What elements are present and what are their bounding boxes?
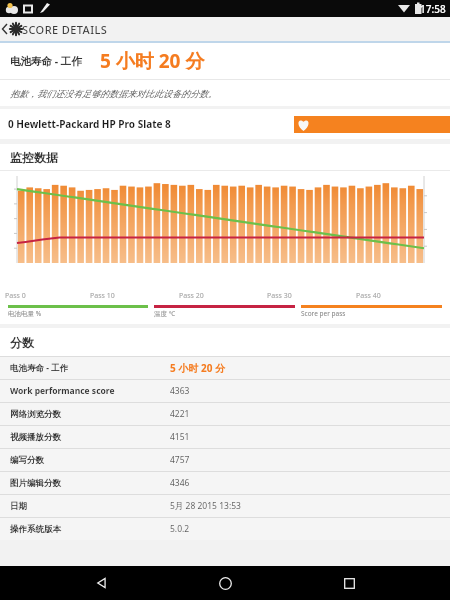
staticText: 5 小时 20 分	[170, 361, 225, 375]
staticText: 5.0.2	[170, 523, 190, 535]
staticText: SCORE DETAILS	[22, 22, 108, 37]
button[interactable]: Work performance score	[0, 380, 450, 402]
staticText: 4151	[170, 431, 190, 443]
button[interactable]: 操作系统版本	[0, 518, 450, 540]
button[interactable]: 视频播放分数	[0, 426, 450, 448]
button[interactable]: 编写分数	[0, 449, 450, 471]
button[interactable]: Home	[203, 566, 247, 600]
staticText: 监控数据	[10, 150, 58, 165]
button[interactable]: 网络浏览分数	[0, 403, 450, 425]
staticText: 5月 28 2015 13:53	[170, 500, 241, 512]
button[interactable]: 电池寿命 - 工作	[0, 357, 450, 379]
staticText: Pass 20	[179, 291, 204, 301]
staticText: Pass 40	[356, 291, 381, 301]
staticText: 4363	[170, 385, 190, 397]
staticText: 4757	[170, 454, 190, 466]
staticText: 电池电量 %	[8, 309, 42, 318]
button[interactable]: Recents	[327, 566, 371, 600]
staticText: 日期	[10, 501, 27, 512]
staticText: 电池寿命 - 工作	[10, 362, 69, 374]
staticText: Pass 0	[5, 291, 26, 301]
staticText: 抱歉，我们还没有足够的数据来对比此设备的分数。	[10, 88, 217, 99]
staticText: 0 Hewlett-Packard HP Pro Slate 8	[8, 117, 171, 131]
staticText: 4346	[170, 477, 190, 489]
staticText: 操作系统版本	[10, 524, 61, 535]
staticText: 5 小时 20 分	[100, 48, 205, 74]
staticText: 分数	[10, 335, 34, 350]
staticText: Work performance score	[10, 385, 115, 397]
staticText: 4221	[170, 408, 190, 420]
other: Back	[0, 17, 22, 41]
staticText: Pass 30	[267, 291, 292, 301]
staticText: 编写分数	[10, 455, 44, 466]
button[interactable]: 日期	[0, 495, 450, 517]
button[interactable]: Back	[80, 566, 124, 600]
staticText: Score per pass	[301, 309, 346, 318]
button[interactable]: Back	[0, 17, 450, 41]
staticText: Pass 10	[90, 291, 115, 301]
staticText: 图片编辑分数	[10, 478, 61, 489]
button[interactable]: 图片编辑分数	[0, 472, 450, 494]
staticText: 视频播放分数	[10, 432, 61, 443]
staticText: 17:58	[420, 2, 446, 16]
staticText: 电池寿命 - 工作	[10, 54, 82, 68]
staticText: 网络浏览分数	[10, 409, 61, 420]
staticText: 温度 ℃	[154, 309, 176, 318]
